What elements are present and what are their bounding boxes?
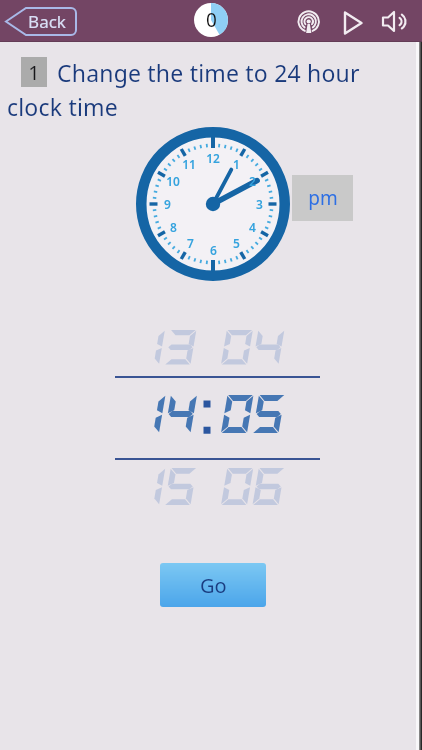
- staticText: 1: [28, 59, 40, 86]
- staticText: 5: [233, 235, 240, 251]
- staticText: pm: [308, 185, 338, 211]
- staticText: 10: [166, 173, 180, 189]
- staticText: Change the time to 24 hour: [57, 57, 360, 88]
- button[interactable]: [381, 9, 407, 35]
- staticText: Go: [200, 572, 227, 599]
- staticText: 7: [187, 235, 194, 251]
- button[interactable]: pm: [0, 0, 61, 46]
- button[interactable]: [339, 9, 364, 34]
- staticText: 3: [256, 196, 263, 212]
- staticText: 11: [182, 156, 196, 172]
- staticText: 6: [210, 242, 217, 258]
- button[interactable]: Back: [0, 0, 66, 29]
- staticText: clock time: [7, 91, 118, 122]
- staticText: 0: [206, 7, 217, 33]
- staticText: 4: [249, 219, 256, 235]
- staticText: Back: [28, 10, 66, 33]
- staticText: 9: [164, 196, 171, 212]
- staticText: 12: [206, 150, 220, 166]
- staticText: 1: [233, 156, 240, 172]
- button[interactable]: [297, 9, 322, 34]
- staticText: 2: [249, 173, 256, 189]
- button[interactable]: [113, 326, 322, 506]
- staticText: 8: [170, 219, 177, 235]
- button[interactable]: Go: [160, 563, 266, 607]
